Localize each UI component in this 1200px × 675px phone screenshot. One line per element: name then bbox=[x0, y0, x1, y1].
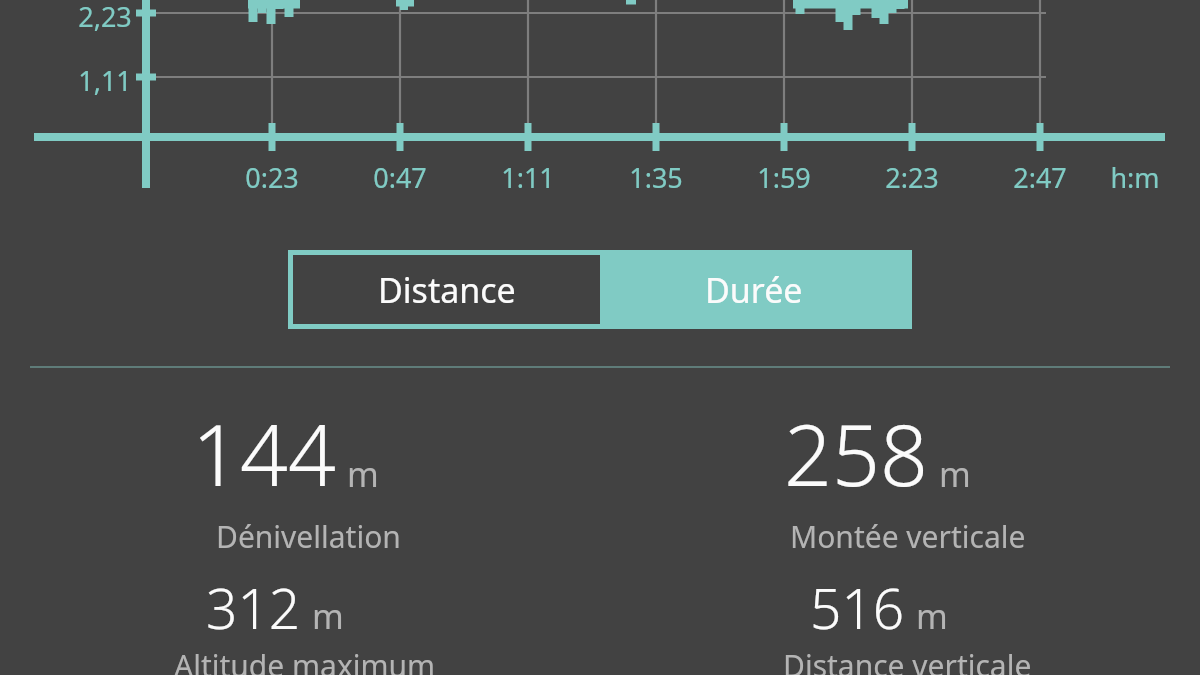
staticText: 1:35 bbox=[614, 159, 698, 196]
staticText: 144 bbox=[192, 396, 336, 510]
staticText: 1,11 bbox=[72, 62, 138, 99]
staticText: 2:47 bbox=[998, 159, 1082, 196]
staticText: Distance bbox=[378, 267, 516, 313]
staticText: m bbox=[939, 451, 971, 497]
staticText: m bbox=[347, 451, 379, 497]
staticText: 2:23 bbox=[870, 159, 954, 196]
staticText: 0:47 bbox=[358, 159, 442, 196]
staticText: 2,23 bbox=[72, 0, 138, 35]
staticText: m bbox=[916, 593, 948, 639]
staticText: Dénivellation bbox=[216, 516, 401, 557]
button[interactable]: Durée bbox=[600, 255, 907, 324]
staticText: 1:11 bbox=[486, 159, 570, 196]
staticText: 516 bbox=[810, 570, 905, 645]
staticText: Montée verticale bbox=[790, 516, 1026, 557]
staticText: Durée bbox=[705, 267, 803, 313]
staticText: Altitude maximum bbox=[174, 645, 436, 675]
staticText: Distance verticale bbox=[783, 645, 1032, 675]
button[interactable]: Distance bbox=[293, 255, 600, 324]
staticText: 0:23 bbox=[230, 159, 314, 196]
staticText: m bbox=[312, 593, 344, 639]
staticText: 258 bbox=[784, 396, 928, 510]
staticText: 312 bbox=[206, 570, 301, 645]
staticText: h:m bbox=[1098, 159, 1172, 196]
staticText: 1:59 bbox=[742, 159, 826, 196]
